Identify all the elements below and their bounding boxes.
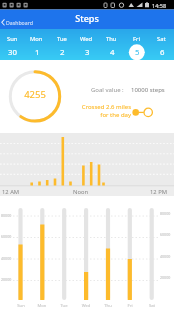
button[interactable]: Fri [124, 29, 149, 60]
staticText: 80000 [160, 211, 171, 216]
button[interactable]: Sun [0, 29, 24, 60]
staticText: Sun [7, 35, 18, 43]
staticText: 60000 [1, 234, 12, 239]
staticText: 12 AM [2, 188, 20, 196]
staticText: Noon [73, 188, 89, 196]
staticText: 10000 steps [131, 86, 165, 94]
staticText: 6 [160, 47, 165, 58]
staticText: 5 [135, 47, 140, 58]
staticText: Wed [80, 35, 93, 43]
staticText: 12 PM [150, 188, 167, 196]
staticText: 2 [60, 47, 65, 58]
staticText: Sat [145, 303, 159, 309]
staticText: Fri [133, 35, 140, 43]
staticText: Sat [157, 35, 166, 43]
staticText: 4 [110, 47, 115, 58]
staticText: Dashboard [6, 19, 33, 26]
staticText: Mon [35, 303, 49, 309]
staticText: Thu [101, 303, 115, 309]
button[interactable]: Dashboard [0, 17, 40, 28]
staticText: Tue [57, 303, 71, 309]
staticText: 1 [35, 47, 40, 58]
staticText: 20000 [160, 275, 171, 280]
staticText: Tue [57, 35, 67, 43]
staticText: Goal value : [91, 86, 124, 94]
staticText: 40000 [160, 254, 171, 259]
staticText: Thu [106, 35, 117, 43]
staticText: 80000 [1, 213, 12, 218]
staticText: Steps [0, 12, 174, 24]
staticText: Mon [30, 35, 43, 43]
staticText: Crossed 2.6 miles [60, 103, 131, 111]
staticText: 3 [85, 47, 90, 58]
staticText: 60000 [160, 232, 171, 237]
staticText: 4255 [9, 88, 61, 101]
staticText: Fri [123, 303, 137, 309]
button[interactable]: Mon [24, 29, 49, 60]
button[interactable]: Sat [149, 29, 174, 60]
staticText: 20000 [1, 277, 12, 282]
button[interactable]: Tue [49, 29, 74, 60]
button[interactable]: Thu [99, 29, 124, 60]
staticText: 14:58 [152, 2, 167, 9]
staticText: 40000 [1, 256, 12, 261]
button[interactable]: Wed [74, 29, 99, 60]
staticText: 30 [8, 47, 17, 58]
staticText: for the day [60, 111, 131, 119]
staticText: Wed [79, 303, 93, 309]
staticText: Sun [14, 303, 28, 309]
